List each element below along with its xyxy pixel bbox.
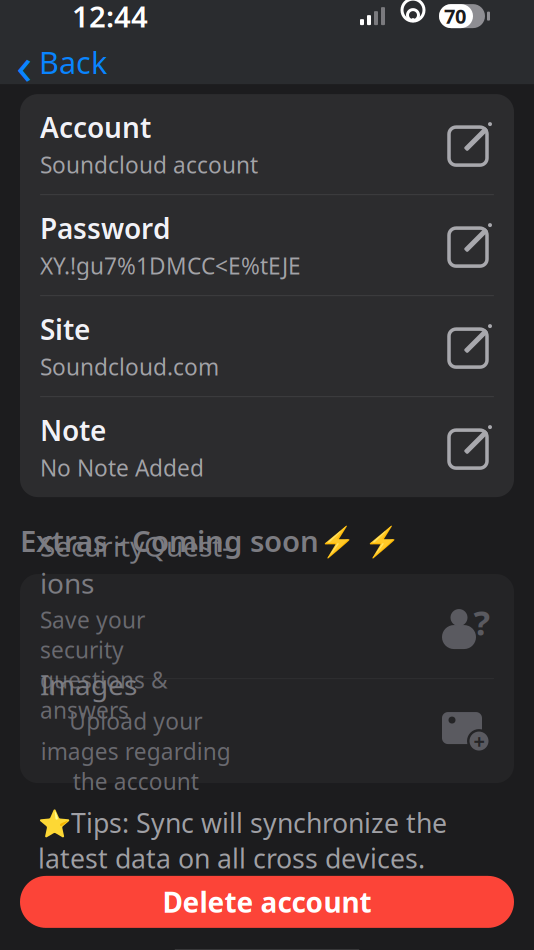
staticText: No Note Added — [40, 453, 204, 483]
button[interactable]: ‹ — [0, 42, 534, 86]
button[interactable]: Site — [20, 296, 514, 396]
staticText: Site — [40, 310, 90, 348]
staticText: ‹ — [16, 29, 33, 99]
staticText: Extras - Coming soon⚡ ⚡ — [20, 521, 401, 560]
staticText: + — [473, 728, 484, 754]
staticText: Password — [40, 209, 171, 247]
staticText: Account — [40, 108, 151, 146]
staticText: Soundcloud.com — [40, 352, 219, 382]
staticText: Soundcloud account — [40, 150, 258, 180]
button[interactable]: Images — [20, 679, 514, 783]
staticText: ? — [473, 599, 490, 645]
staticText: Images — [40, 666, 137, 703]
button[interactable]: Password — [20, 195, 514, 295]
staticText: Save your security questions & answers — [40, 604, 168, 725]
staticText: 70 — [444, 3, 466, 29]
button[interactable]: Account — [20, 94, 514, 194]
staticText: XY.!gu7%1DMCC<E%tEJE — [40, 251, 301, 281]
staticText: Note — [40, 411, 106, 449]
staticText: SecurityQuestions — [40, 527, 231, 602]
button[interactable]: Delete account — [20, 876, 514, 928]
staticText: Upload your images regarding the account — [40, 706, 230, 796]
staticText: Back — [39, 42, 107, 82]
staticText: 12:44 — [72, 0, 148, 36]
button[interactable]: Note — [20, 397, 514, 497]
staticText: ⭐Tips: Sync will synchronize the latest … — [38, 805, 447, 876]
staticText: Delete account — [162, 883, 371, 920]
button[interactable]: SecurityQuestions — [20, 574, 514, 678]
